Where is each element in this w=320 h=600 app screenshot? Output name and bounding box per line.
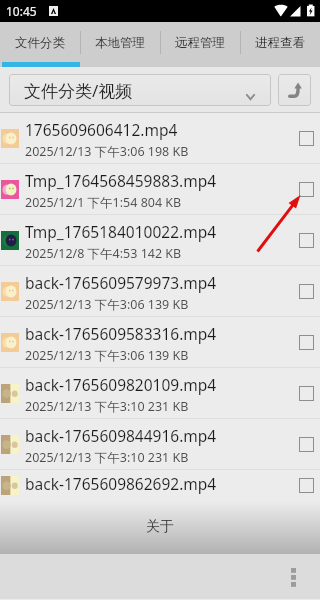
button[interactable]: 远程管理 bbox=[160, 22, 240, 67]
button[interactable]: back-1765609820109.mp4 bbox=[0, 368, 320, 418]
button[interactable]: back-1765609583316.mp4 bbox=[0, 317, 320, 367]
button[interactable]: Select file bbox=[299, 478, 314, 493]
staticText: 远程管理 bbox=[175, 35, 225, 51]
staticText: 1765609606412.mp4 bbox=[25, 119, 178, 140]
staticText: 文件分类 bbox=[15, 35, 65, 51]
button[interactable]: More options bbox=[281, 562, 305, 593]
staticText: 2025/12/1 下午1:54 804 KB bbox=[25, 194, 182, 211]
staticText: back-1765609820109.mp4 bbox=[25, 374, 217, 395]
staticText: 10:45 bbox=[6, 3, 37, 19]
button[interactable]: back-1765609862692.mp4 bbox=[0, 470, 320, 500]
staticText: 文件分类/视频 bbox=[24, 79, 133, 102]
button[interactable]: back-1765609844916.mp4 bbox=[0, 419, 320, 469]
staticText: 本地管理 bbox=[95, 35, 145, 51]
button[interactable]: 进程查看 bbox=[240, 22, 320, 67]
button[interactable]: 文件分类 bbox=[0, 22, 80, 67]
staticText: back-1765609862692.mp4 bbox=[25, 473, 217, 494]
staticText: Tmp_1764568459883.mp4 bbox=[25, 170, 217, 191]
button[interactable]: 1765609606412.mp4 bbox=[0, 113, 320, 163]
button[interactable]: Select file bbox=[299, 284, 314, 299]
staticText: 进程查看 bbox=[255, 35, 305, 51]
staticText: back-1765609844916.mp4 bbox=[25, 425, 217, 446]
staticText: 2025/12/8 下午4:53 142 KB bbox=[25, 245, 182, 262]
button[interactable]: Select file bbox=[299, 182, 314, 197]
button[interactable]: Up one level bbox=[278, 74, 311, 106]
button[interactable]: 关于 bbox=[0, 500, 320, 554]
button[interactable]: Tmp_1764568459883.mp4 bbox=[0, 164, 320, 214]
staticText: 2025/12/13 下午3:06 139 KB bbox=[25, 296, 189, 313]
staticText: 2025/12/13 下午3:10 231 KB bbox=[25, 449, 189, 466]
button[interactable]: Select file bbox=[299, 335, 314, 350]
staticText: 2025/12/13 下午3:10 231 KB bbox=[25, 398, 189, 415]
staticText: back-1765609579973.mp4 bbox=[25, 272, 217, 293]
staticText: back-1765609583316.mp4 bbox=[25, 323, 217, 344]
staticText: 2025/12/13 下午3:06 139 KB bbox=[25, 347, 189, 364]
button[interactable]: 本地管理 bbox=[80, 22, 160, 67]
button[interactable]: Select file bbox=[299, 437, 314, 452]
button[interactable]: Tmp_1765184010022.mp4 bbox=[0, 215, 320, 265]
button[interactable]: back-1765609579973.mp4 bbox=[0, 266, 320, 316]
button[interactable]: 文件分类/视频 bbox=[9, 74, 271, 106]
staticText: 关于 bbox=[146, 518, 174, 536]
button[interactable]: Select file bbox=[299, 131, 314, 146]
button[interactable]: Select file bbox=[299, 233, 314, 248]
staticText: 2025/12/13 下午3:06 198 KB bbox=[25, 143, 189, 160]
button[interactable]: Select file bbox=[299, 386, 314, 401]
staticText: Tmp_1765184010022.mp4 bbox=[25, 221, 217, 242]
